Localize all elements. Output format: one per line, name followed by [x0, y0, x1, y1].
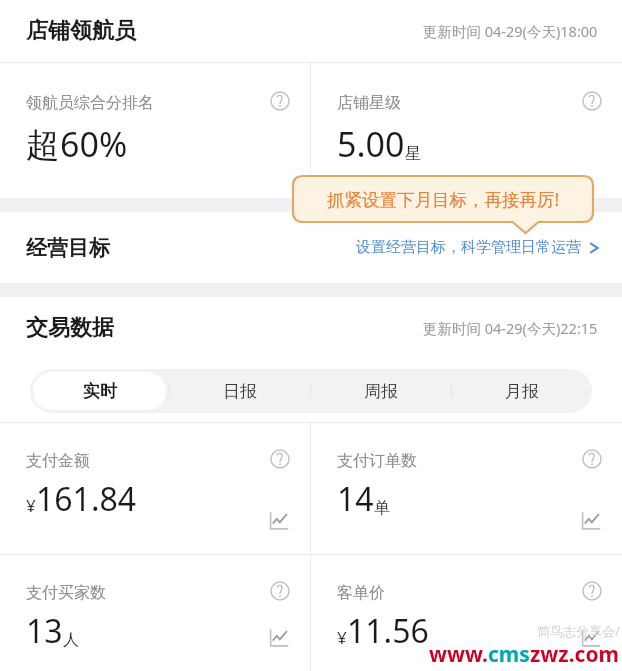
- button[interactable]: 查看趋势图 支付金额: [268, 510, 290, 532]
- staticText: 星: [405, 144, 421, 164]
- staticText: 日报: [223, 381, 257, 402]
- button[interactable]: 帮助说明 客单价: [582, 581, 602, 601]
- button[interactable]: 经营目标: [0, 212, 622, 283]
- button[interactable]: 实时: [33, 372, 166, 410]
- button[interactable]: 帮助说明 支付买家数: [270, 581, 290, 601]
- button[interactable]: 帮助说明 支付订单数: [582, 449, 602, 469]
- button[interactable]: 帮助说明 店铺星级: [582, 91, 602, 111]
- button[interactable]: 查看趋势图 支付买家数: [268, 627, 290, 649]
- staticText: 11.56: [347, 609, 429, 653]
- button[interactable]: 查看趋势图 客单价: [580, 627, 602, 649]
- staticText: 支付金额: [26, 451, 90, 471]
- staticText: zwz.com: [530, 640, 620, 669]
- button[interactable]: 支付买家数: [0, 555, 310, 671]
- staticText: 交易数据: [26, 314, 114, 342]
- button[interactable]: 帮助说明 领航员综合分排名: [270, 91, 290, 111]
- staticText: 更新时间 04-29(今天)22:15: [423, 318, 598, 338]
- staticText: 支付订单数: [337, 451, 417, 471]
- staticText: 店铺星级: [337, 93, 401, 113]
- staticText: 经营目标: [26, 235, 110, 261]
- staticText: cms: [488, 640, 530, 669]
- staticText: 客单价: [337, 583, 385, 603]
- staticText: 月报: [505, 381, 539, 402]
- staticText: 14: [337, 477, 374, 521]
- staticText: 人: [63, 630, 79, 650]
- staticText: ¥: [337, 626, 347, 649]
- staticText: 更新时间 04-29(今天)18:00: [423, 21, 598, 41]
- staticText: ¥: [26, 494, 36, 517]
- button[interactable]: 支付金额: [0, 423, 310, 554]
- staticText: 领航员综合分排名: [26, 93, 154, 113]
- staticText: 161.84: [36, 477, 137, 521]
- button[interactable]: 支付订单数: [311, 423, 622, 554]
- staticText: 13: [26, 609, 63, 653]
- staticText: 实时: [83, 381, 117, 402]
- button[interactable]: 周报: [314, 372, 448, 410]
- staticText: 单: [374, 498, 390, 518]
- staticText: 店铺领航员: [26, 17, 136, 45]
- button[interactable]: 查看趋势图 支付订单数: [580, 510, 602, 532]
- staticText: 设置经营目标，科学管理日常运营: [356, 238, 581, 257]
- button[interactable]: 客单价: [311, 555, 622, 671]
- button[interactable]: 抓紧设置下月目标，再接再厉!: [293, 176, 593, 233]
- button[interactable]: 店铺星级: [311, 63, 622, 198]
- staticText: 周报: [364, 381, 398, 402]
- button[interactable]: 帮助说明 支付金额: [270, 449, 290, 469]
- button[interactable]: 日报: [173, 372, 307, 410]
- button[interactable]: 月报: [455, 372, 589, 410]
- staticText: 5.00: [337, 121, 405, 167]
- staticText: www.: [429, 640, 488, 669]
- staticText: 支付买家数: [26, 583, 106, 603]
- staticText: 超60%: [26, 121, 128, 167]
- staticText: 抓紧设置下月目标，再接再厉!: [293, 187, 593, 211]
- button[interactable]: 领航员综合分排名: [0, 63, 310, 198]
- staticText: 简鸟志分享会/: [537, 622, 620, 640]
